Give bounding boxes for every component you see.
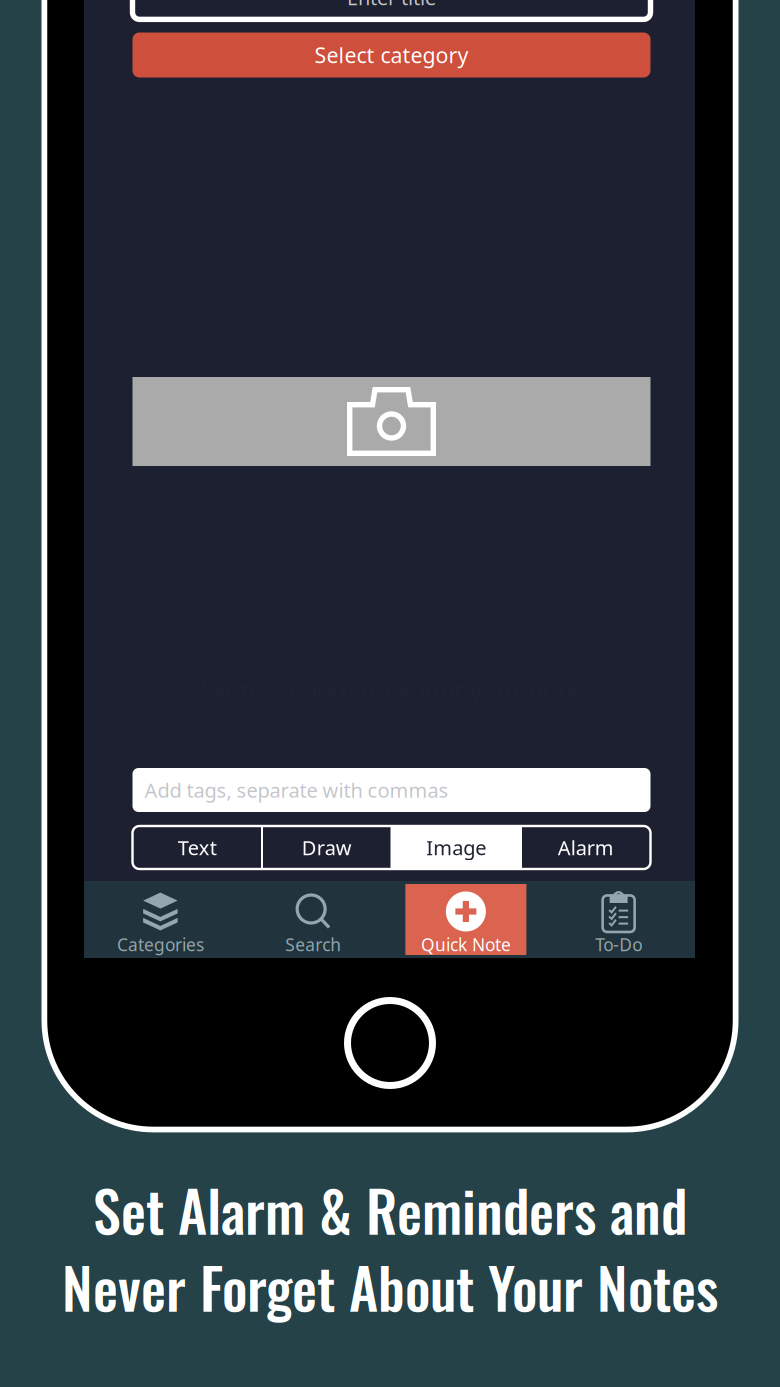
button[interactable]: Search bbox=[237, 881, 390, 958]
staticText: Set Alarm & Reminders and bbox=[93, 1168, 687, 1251]
button[interactable]: Add image bbox=[132, 377, 650, 466]
button[interactable]: Draw bbox=[262, 826, 391, 869]
staticText: Text bbox=[178, 834, 217, 861]
staticText: Quick Note bbox=[421, 933, 511, 956]
staticText: Add tags, separate with commas bbox=[144, 777, 448, 803]
staticText: Image bbox=[426, 834, 486, 861]
button[interactable]: Alarm bbox=[521, 826, 650, 869]
button[interactable]: Categories bbox=[84, 881, 237, 958]
staticText: Search bbox=[285, 933, 341, 956]
button[interactable]: Quick Note bbox=[389, 881, 542, 958]
staticText: To-Do bbox=[595, 933, 642, 956]
staticText: Enter title bbox=[347, 0, 436, 11]
button[interactable]: Select category bbox=[132, 32, 650, 77]
staticText: Alarm bbox=[558, 834, 614, 861]
staticText: Categories bbox=[117, 933, 204, 956]
staticText: Draw bbox=[302, 834, 352, 861]
button[interactable]: Image bbox=[391, 826, 521, 869]
button[interactable]: To-Do bbox=[542, 881, 695, 958]
staticText: Select category bbox=[314, 41, 468, 69]
button[interactable]: Text bbox=[132, 826, 262, 869]
staticText: Never Forget About Your Notes bbox=[62, 1245, 718, 1328]
